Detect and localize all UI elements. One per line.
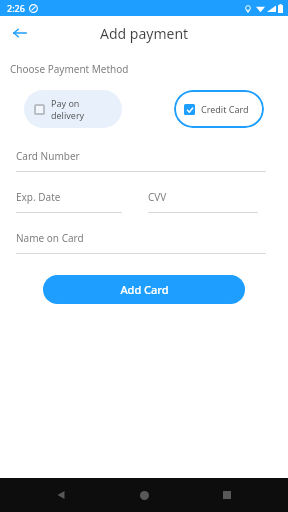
staticText: Exp. Date xyxy=(16,190,61,204)
staticText: Card Number xyxy=(16,149,80,163)
button[interactable]: Credit Card xyxy=(174,90,264,128)
staticText: 2:26 xyxy=(7,2,25,14)
staticText: Choose Payment Method xyxy=(10,62,129,76)
staticText: Name on Card xyxy=(16,231,84,245)
button[interactable]: Back xyxy=(48,482,74,508)
staticText: Add Card xyxy=(120,282,169,297)
button[interactable]: Name on Card xyxy=(16,231,266,254)
button[interactable]: Home xyxy=(131,482,157,508)
staticText: Add payment xyxy=(100,24,189,43)
staticText: Credit Card xyxy=(201,103,249,115)
button[interactable]: Recent apps xyxy=(214,482,240,508)
button[interactable]: Pay on delivery xyxy=(24,90,122,128)
staticText: Pay on delivery xyxy=(51,97,112,121)
button[interactable]: CVV xyxy=(148,190,258,213)
staticText: CVV xyxy=(148,190,167,204)
button[interactable]: Add Card xyxy=(43,275,245,304)
button[interactable]: Card Number xyxy=(16,149,266,172)
button[interactable]: Back xyxy=(8,21,32,45)
button[interactable]: Exp. Date xyxy=(16,190,122,213)
